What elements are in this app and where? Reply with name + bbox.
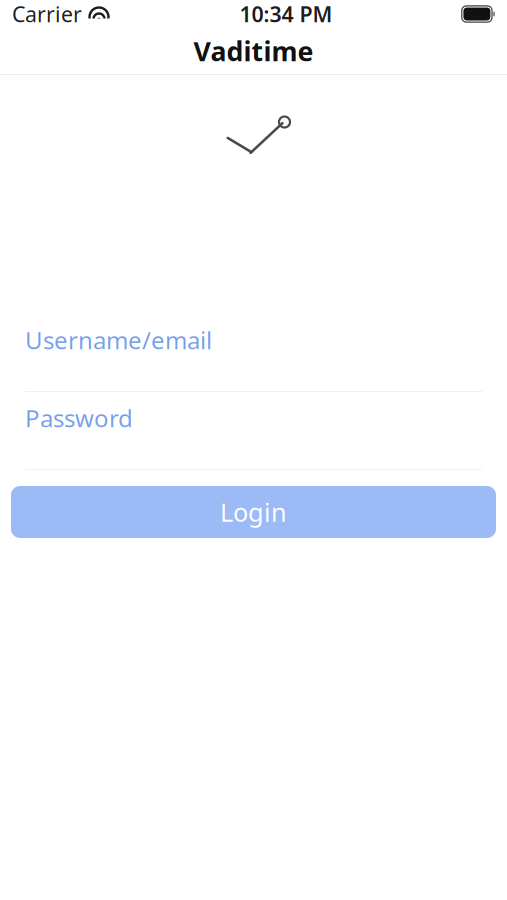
staticText: Vaditime xyxy=(193,33,313,69)
staticText: Password xyxy=(25,402,133,434)
button[interactable]: Login xyxy=(11,486,496,538)
staticText: Username/email xyxy=(25,324,212,356)
staticText: Carrier xyxy=(12,0,82,28)
staticText: 10:34 PM xyxy=(239,0,332,28)
staticText: Login xyxy=(220,495,287,529)
